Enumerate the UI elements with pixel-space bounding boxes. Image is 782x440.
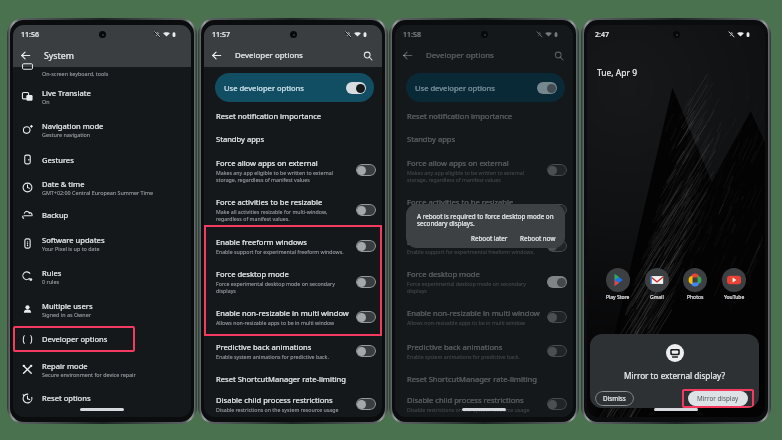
button[interactable] <box>356 164 376 176</box>
staticText: Force allow apps on external <box>407 158 509 168</box>
button[interactable]: Mirror display <box>688 391 748 406</box>
staticText: Reset notification importance <box>216 111 322 121</box>
button[interactable] <box>547 204 567 216</box>
button[interactable]: Force desktop mode <box>395 262 573 301</box>
button[interactable] <box>356 240 376 252</box>
button[interactable]: Enable non-resizable in multi window <box>395 301 573 333</box>
button[interactable]: Force allow apps on external <box>395 151 573 189</box>
staticText: Play Store <box>606 294 630 301</box>
staticText: Enable freeform windows <box>216 237 307 247</box>
staticText: Mirror display <box>697 394 739 403</box>
button[interactable]: Force desktop mode <box>204 262 382 301</box>
button[interactable]: Use developer options <box>406 73 565 102</box>
button[interactable]: Back <box>211 50 222 61</box>
button[interactable]: Reset ShortcutManager rate-limiting <box>204 368 382 390</box>
staticText: Enable system animations for predictive … <box>216 353 329 360</box>
button[interactable] <box>537 82 557 94</box>
button[interactable]: Use developer options <box>215 73 374 102</box>
button[interactable]: Predictive back animations <box>204 333 382 368</box>
staticText: Standby apps <box>407 134 456 144</box>
staticText: Allows non-resizable apps to be in multi… <box>216 319 335 326</box>
staticText: Makes any app eligible to be written to … <box>407 169 525 183</box>
staticText: Photos <box>687 294 704 301</box>
staticText: GMT+02:00 Central European Summer Time <box>42 189 154 196</box>
button[interactable] <box>356 311 376 323</box>
button[interactable]: Search <box>363 51 373 61</box>
button[interactable]: Reset ShortcutManager rate-limiting <box>395 368 573 390</box>
button[interactable]: Disable child process restrictions <box>204 390 382 417</box>
staticText: Disable child process restrictions <box>407 395 524 405</box>
button[interactable]: Standby apps <box>204 127 382 151</box>
staticText: On-screen keyboard, tools <box>42 70 109 77</box>
staticText: Make all activities resizable for multi-… <box>407 208 519 222</box>
button[interactable] <box>547 311 567 323</box>
button[interactable]: Force activities to be resizable <box>204 189 382 230</box>
button[interactable] <box>356 345 376 357</box>
button[interactable]: Gestures <box>13 147 191 172</box>
staticText: Developer options <box>235 50 303 61</box>
staticText: Dismiss <box>603 394 626 403</box>
staticText: Force allow apps on external <box>216 158 318 168</box>
button[interactable]: Repair mode <box>13 352 191 386</box>
button[interactable]: Back <box>402 50 413 61</box>
button[interactable]: Rules <box>13 260 191 292</box>
staticText: Reboot now <box>520 234 556 243</box>
staticText: 11:56 <box>21 30 39 40</box>
button[interactable]: Force allow apps on external <box>204 151 382 189</box>
button[interactable]: Photos <box>683 268 707 292</box>
staticText: Make all activities resizable for multi-… <box>216 208 328 222</box>
staticText: Navigation mode <box>42 121 104 131</box>
button[interactable]: Live Translate <box>13 80 191 112</box>
button[interactable]: Date & time <box>13 172 191 203</box>
button[interactable]: Search <box>554 51 564 61</box>
staticText: 11:58 <box>403 30 421 40</box>
staticText: Allows non-resizable apps to be in multi… <box>407 319 526 326</box>
button[interactable]: Disable child process restrictions <box>395 390 573 417</box>
button[interactable] <box>547 398 567 410</box>
button[interactable]: Multiple users <box>13 292 191 326</box>
button[interactable] <box>547 164 567 176</box>
button[interactable]: Reset notification importance <box>204 104 382 127</box>
button[interactable]: Back <box>20 50 31 61</box>
button[interactable]: Reboot now <box>518 234 558 243</box>
button[interactable] <box>356 398 376 410</box>
button[interactable]: Software updates <box>13 226 191 260</box>
staticText: Reboot later <box>471 234 508 243</box>
button[interactable]: Gmail <box>645 268 669 292</box>
staticText: Enable non-resizable in multi window <box>407 308 540 318</box>
button[interactable]: Dismiss <box>595 391 634 406</box>
button[interactable]: Developer options <box>13 326 191 352</box>
button[interactable]: Play Store <box>606 268 630 292</box>
staticText: Your Pixel is up to date <box>42 245 100 252</box>
staticText: Standby apps <box>216 134 265 144</box>
staticText: Enable system animations for predictive … <box>407 353 520 360</box>
staticText: A reboot is required to force desktop mo… <box>417 212 554 228</box>
staticText: Disable child process restrictions <box>216 395 333 405</box>
button[interactable]: Enable freeform windows <box>204 230 382 262</box>
button[interactable]: Navigation mode <box>13 112 191 147</box>
button[interactable] <box>356 204 376 216</box>
button[interactable]: Enable non-resizable in multi window <box>204 301 382 333</box>
button[interactable]: Predictive back animations <box>395 333 573 368</box>
button[interactable]: Standby apps <box>395 127 573 151</box>
button[interactable] <box>547 276 567 288</box>
button[interactable]: Backup <box>13 203 191 226</box>
button[interactable]: Reboot later <box>469 234 510 243</box>
button[interactable]: Force activities to be resizable <box>395 189 573 230</box>
button[interactable]: Reset notification importance <box>395 104 573 127</box>
button[interactable] <box>346 82 366 94</box>
staticText: Use developer options <box>224 83 304 93</box>
staticText: Tue, Apr 9 <box>597 67 638 79</box>
staticText: Secure environment for device repair <box>42 371 136 378</box>
staticText: Force activities to be resizable <box>216 197 323 207</box>
button[interactable] <box>356 276 376 288</box>
button[interactable]: YouTube <box>722 268 746 292</box>
staticText: Predictive back animations <box>407 342 503 352</box>
button[interactable] <box>547 240 567 252</box>
button[interactable]: Enable freeform windows <box>395 230 573 262</box>
staticText: Force activities to be resizable <box>407 197 514 207</box>
button[interactable] <box>547 345 567 357</box>
staticText: YouTube <box>724 294 745 301</box>
staticText: Reset options <box>42 393 91 403</box>
button[interactable]: Reset options <box>13 386 191 410</box>
